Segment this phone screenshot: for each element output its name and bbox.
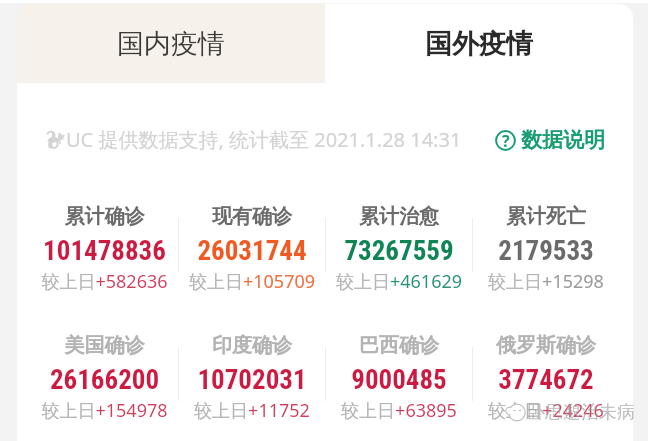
staticText: 2179533 xyxy=(473,235,619,267)
button[interactable]: 美国确诊 xyxy=(31,333,178,441)
staticText: ? xyxy=(502,130,510,151)
staticText: 较上日+582636 xyxy=(31,269,178,294)
button[interactable]: 印度确诊 xyxy=(179,333,325,441)
other: Data explanation xyxy=(495,130,516,151)
button[interactable]: 国内疫情 xyxy=(17,4,325,83)
staticText: 现有确诊 xyxy=(179,204,325,229)
staticText: 卧思邈治未病 xyxy=(527,401,635,424)
button[interactable]: 巴西确诊 xyxy=(326,333,472,441)
staticText: 101478836 xyxy=(31,235,178,267)
staticText: 3774672 xyxy=(473,364,619,396)
button[interactable]: 俄罗斯确诊 xyxy=(473,333,619,441)
staticText: 累计确诊 xyxy=(31,204,178,229)
staticText: 较上日+461629 xyxy=(326,269,472,294)
staticText: 较上日+105709 xyxy=(179,269,325,294)
button[interactable]: 现有确诊 xyxy=(179,204,325,324)
button[interactable]: 累计确诊 xyxy=(31,204,178,324)
staticText: 数据说明 xyxy=(521,127,605,153)
staticText: 俄罗斯确诊 xyxy=(473,333,619,358)
button[interactable]: Data explanation xyxy=(495,127,605,153)
button[interactable]: 国外疫情 xyxy=(325,4,633,83)
staticText: 较上日+63895 xyxy=(326,398,472,423)
staticText: 累计死亡 xyxy=(473,204,619,229)
staticText: 较上日+24246 xyxy=(473,398,619,423)
staticText: UC 提供数据支持, 统计截至 2021.1.28 14:31 xyxy=(66,126,462,153)
staticText: 10702031 xyxy=(179,364,325,396)
staticText: 印度确诊 xyxy=(179,333,325,358)
staticText: 26031744 xyxy=(179,235,325,267)
staticText: 较上日+11752 xyxy=(179,398,325,423)
button[interactable]: 累计治愈 xyxy=(326,204,472,324)
staticText: 巴西确诊 xyxy=(326,333,472,358)
staticText: 73267559 xyxy=(326,235,472,267)
staticText: 9000485 xyxy=(326,364,472,396)
staticText: 国内疫情 xyxy=(117,27,225,61)
staticText: 美国确诊 xyxy=(31,333,178,358)
staticText: 国外疫情 xyxy=(425,27,533,61)
button[interactable]: 累计死亡 xyxy=(473,204,619,324)
staticText: 较上日+154978 xyxy=(31,398,178,423)
staticText: 26166200 xyxy=(31,364,178,396)
staticText: 累计治愈 xyxy=(326,204,472,229)
staticText: 较上日+15298 xyxy=(473,269,619,294)
